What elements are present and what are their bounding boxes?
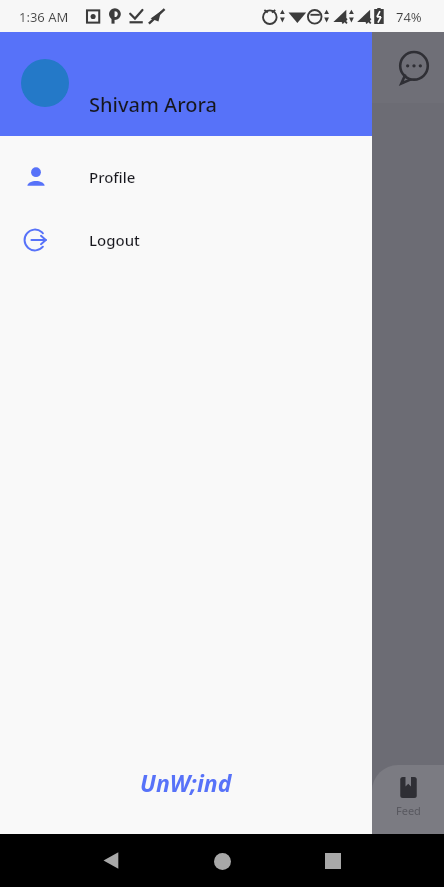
button[interactable]: Back	[90, 834, 444, 887]
button[interactable]: Feed	[396, 775, 421, 818]
button[interactable]: Logout	[0, 219, 372, 261]
button[interactable]: Recent apps	[311, 839, 355, 883]
staticText: Profile	[89, 167, 136, 187]
button[interactable]: Home	[200, 839, 244, 883]
staticText: 1:36 AM	[19, 8, 69, 26]
staticText: 74%	[396, 8, 422, 26]
staticText: Feed	[396, 803, 421, 818]
button[interactable]: Chat	[392, 45, 436, 89]
staticText: Shivam Arora	[89, 91, 217, 118]
button[interactable]: Profile	[0, 156, 372, 198]
staticText: Logout	[89, 230, 140, 250]
staticText: UnW;ind	[140, 767, 232, 798]
button[interactable]: Shivam Arora	[0, 32, 372, 136]
